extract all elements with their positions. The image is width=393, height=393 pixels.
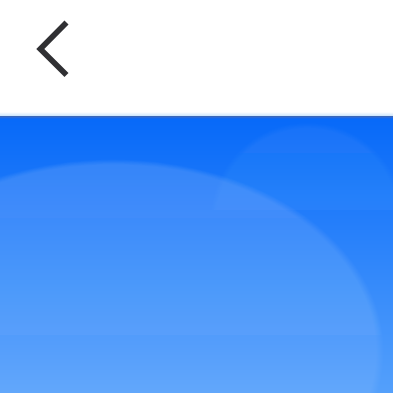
button[interactable]: Back xyxy=(18,24,86,92)
